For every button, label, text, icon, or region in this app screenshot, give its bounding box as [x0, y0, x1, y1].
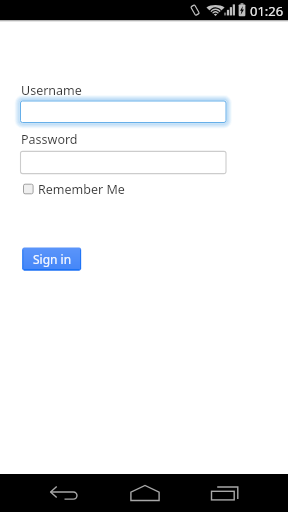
staticText: Remember Me: [38, 181, 125, 198]
button[interactable]: Recent apps: [199, 474, 251, 512]
button[interactable]: Back: [38, 474, 90, 512]
button[interactable]: [20, 150, 227, 175]
staticText: Password: [21, 131, 78, 148]
button[interactable]: Remember Me: [23, 181, 125, 198]
staticText: Username: [21, 82, 82, 99]
button[interactable]: [20, 101, 226, 123]
button[interactable]: Sign in: [22, 247, 82, 271]
button[interactable]: Home: [119, 474, 171, 512]
staticText: 01:26: [250, 2, 284, 20]
staticText: Sign in: [33, 251, 72, 267]
